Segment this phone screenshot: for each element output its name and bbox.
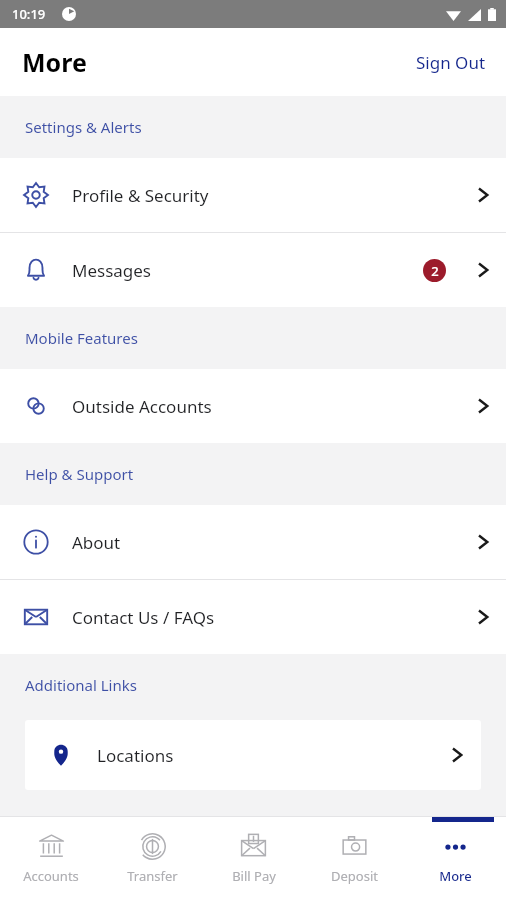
staticText: Contact Us / FAQs	[72, 606, 460, 629]
button[interactable]: Locations	[25, 720, 481, 790]
button[interactable]: Accounts	[0, 817, 102, 900]
staticText: 10:19	[12, 5, 46, 23]
button[interactable]: Profile & Security	[0, 158, 506, 232]
button[interactable]: Outside Accounts	[0, 369, 506, 443]
button[interactable]: Bill Pay	[203, 817, 304, 900]
staticText: About	[72, 531, 460, 554]
staticText: Settings & Alerts	[25, 117, 142, 137]
button[interactable]: About	[0, 505, 506, 579]
button[interactable]: Deposit	[304, 817, 405, 900]
staticText: Accounts	[23, 867, 79, 885]
button[interactable]: Contact Us / FAQs	[0, 580, 506, 654]
staticText: Profile & Security	[72, 184, 460, 207]
button[interactable]: Sign Out	[396, 39, 506, 86]
staticText: Bill Pay	[232, 867, 276, 885]
staticText: Transfer	[127, 867, 178, 885]
staticText: Mobile Features	[25, 328, 138, 348]
button[interactable]: Transfer	[102, 817, 203, 900]
button[interactable]: More	[405, 817, 506, 900]
staticText: Outside Accounts	[72, 395, 460, 418]
staticText: Additional Links	[25, 675, 137, 695]
staticText: Sign Out	[416, 51, 486, 74]
staticText: Help & Support	[25, 464, 134, 484]
staticText: Messages	[72, 259, 423, 282]
staticText: More	[439, 867, 472, 885]
staticText: More	[22, 45, 87, 79]
staticText: Locations	[97, 744, 433, 767]
other: More	[442, 833, 469, 860]
staticText: Deposit	[331, 867, 378, 885]
button[interactable]: Messages	[0, 233, 506, 307]
staticText: 2	[431, 262, 439, 280]
